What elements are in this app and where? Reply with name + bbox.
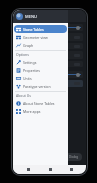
- staticText: Settings: [23, 60, 37, 65]
- staticText: Graph: [23, 43, 34, 48]
- button[interactable]: More apps: [14, 107, 67, 115]
- button[interactable]: [16, 33, 83, 41]
- staticText: About Us: [16, 93, 31, 98]
- button[interactable]: [16, 24, 83, 31]
- staticText: Options: [16, 52, 29, 57]
- button[interactable]: [16, 61, 83, 67]
- staticText: Paratype version: [23, 84, 51, 89]
- button[interactable]: Units: [14, 74, 67, 82]
- button[interactable]: Dialog: [65, 153, 82, 161]
- staticText: Stone Tables: [23, 27, 44, 32]
- staticText: MENU: [25, 14, 37, 19]
- button[interactable]: About Stone Tables: [14, 99, 67, 107]
- button[interactable]: Back: [21, 165, 35, 174]
- button[interactable]: MENU: [13, 10, 68, 23]
- button[interactable]: [16, 71, 83, 78]
- button[interactable]: Properties: [14, 66, 67, 74]
- staticText: About Stone Tables: [23, 101, 55, 106]
- button[interactable]: Paratype version: [14, 82, 67, 90]
- staticText: Properties: [23, 68, 40, 73]
- button[interactable]: Recent apps: [64, 165, 78, 174]
- staticText: Geometer view: [23, 35, 48, 40]
- staticText: Units: [23, 76, 32, 81]
- button[interactable]: [16, 43, 83, 49]
- staticText: Dialog: [69, 155, 79, 159]
- staticText: More apps: [23, 109, 41, 114]
- button[interactable]: Settings: [14, 58, 67, 66]
- button[interactable]: Stone Tables: [14, 25, 67, 33]
- button[interactable]: Home: [43, 165, 57, 174]
- button[interactable]: [16, 51, 83, 59]
- button[interactable]: Geometer view: [14, 33, 67, 41]
- button[interactable]: [16, 80, 83, 87]
- button[interactable]: Graph: [14, 41, 67, 49]
